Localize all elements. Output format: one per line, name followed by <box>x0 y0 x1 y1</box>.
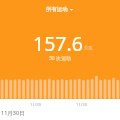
staticText: 公里 <box>84 45 93 50</box>
staticText: 30 次运动 <box>49 55 72 62</box>
staticText: 11/30 <box>30 102 42 108</box>
button[interactable]: 所有运动 <box>46 6 74 13</box>
staticText: 157.6 <box>33 30 83 57</box>
staticText: 11/30 <box>76 102 88 108</box>
staticText: 所有运动 <box>46 6 68 13</box>
staticText: 11月30日 <box>1 109 25 117</box>
